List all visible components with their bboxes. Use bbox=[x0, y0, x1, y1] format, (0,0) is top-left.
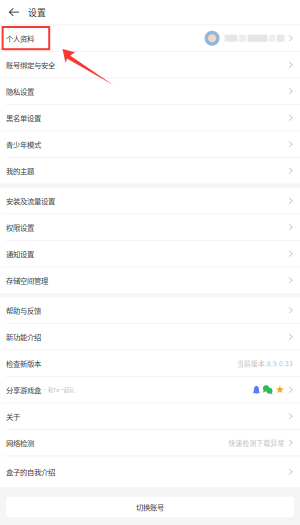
button[interactable]: 帮助与反馈 bbox=[0, 297, 300, 323]
button[interactable]: 分享游戏盒 bbox=[0, 377, 300, 402]
staticText: 网络检测 bbox=[6, 437, 34, 448]
button[interactable]: 账号绑定与安全 bbox=[0, 52, 300, 77]
staticText: 存储空间管理 bbox=[6, 275, 48, 285]
button[interactable]: 切换账号 bbox=[6, 497, 294, 517]
button[interactable]: 安装及流量设置 bbox=[0, 188, 300, 213]
staticText: 设置 bbox=[28, 6, 46, 19]
button[interactable]: 检查新版本 bbox=[0, 350, 300, 376]
button[interactable]: 青少年模式 bbox=[0, 131, 300, 157]
button[interactable]: 存储空间管理 bbox=[0, 267, 300, 293]
staticText: 个人资料 bbox=[6, 33, 34, 43]
staticText: 权限设置 bbox=[6, 222, 34, 232]
button[interactable]: 黑名单设置 bbox=[0, 105, 300, 130]
staticText: 隐私设置 bbox=[6, 86, 34, 96]
button[interactable]: Back bbox=[0, 0, 28, 24]
staticText: 切换账号 bbox=[136, 502, 164, 512]
staticText: 通知设置 bbox=[6, 248, 34, 259]
button[interactable]: 关于 bbox=[0, 403, 300, 429]
staticText: 安装及流量设置 bbox=[6, 195, 55, 206]
staticText: 快速检测下载异常 bbox=[229, 438, 285, 448]
staticText: · 和Ta一起玩 bbox=[41, 386, 74, 394]
button[interactable]: 盒子的自我介绍 bbox=[0, 456, 300, 487]
button[interactable]: 隐私设置 bbox=[0, 78, 300, 104]
button[interactable]: 网络检测 bbox=[0, 430, 300, 455]
button[interactable]: 通知设置 bbox=[0, 241, 300, 266]
staticText: 当前版本:8.9.0.33 bbox=[237, 358, 293, 368]
staticText: 关于 bbox=[6, 411, 20, 421]
staticText: 新功能介绍 bbox=[6, 331, 41, 342]
button[interactable]: 个人资料 bbox=[0, 25, 300, 51]
button[interactable]: 权限设置 bbox=[0, 214, 300, 240]
button[interactable]: 我的主题 bbox=[0, 158, 300, 183]
staticText: 青少年模式 bbox=[6, 139, 41, 149]
staticText: 分享游戏盒 bbox=[6, 384, 41, 395]
staticText: 检查新版本 bbox=[6, 358, 41, 368]
staticText: 帮助与反馈 bbox=[6, 305, 41, 315]
button[interactable]: 新功能介绍 bbox=[0, 324, 300, 349]
staticText: 盒子的自我介绍 bbox=[6, 466, 55, 477]
staticText: 我的主题 bbox=[6, 165, 34, 176]
staticText: 账号绑定与安全 bbox=[6, 59, 55, 70]
staticText: 黑名单设置 bbox=[6, 112, 41, 123]
